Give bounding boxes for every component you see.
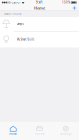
staticText: Rooms xyxy=(35,132,44,136)
staticText: 9:41 xyxy=(36,1,43,4)
button[interactable]: Settings xyxy=(53,121,79,140)
staticText: 100% xyxy=(62,1,70,4)
staticText: Home xyxy=(34,5,45,11)
button[interactable]: Home xyxy=(0,121,26,140)
staticText: Settings xyxy=(60,132,71,136)
button[interactable]: Add accessory xyxy=(70,5,79,11)
staticText: Home xyxy=(9,132,17,136)
button[interactable]: Rooms xyxy=(26,121,53,140)
staticText: Carrier xyxy=(11,1,20,4)
button[interactable]: My Smart Bulb xyxy=(0,31,79,47)
staticText: Lamps xyxy=(16,22,23,26)
staticText: SMART HOUSE xyxy=(4,12,21,16)
button[interactable]: Lamps xyxy=(0,17,79,31)
staticText: My Smart Bulb xyxy=(16,38,34,41)
